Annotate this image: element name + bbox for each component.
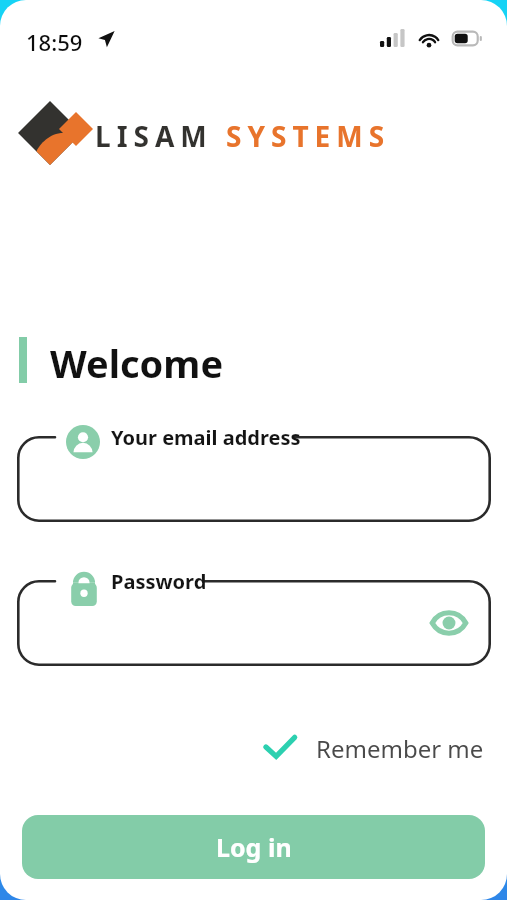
button[interactable]: Remember me [258,722,490,772]
staticText: LISAM SYSTEMS [95,117,391,155]
staticText: 18:59 [26,27,83,57]
button[interactable]: Log in [22,815,485,879]
staticText: Your email address [111,424,301,451]
button[interactable] [17,580,491,666]
button[interactable] [17,436,491,522]
staticText: Remember me [316,732,484,765]
staticText: Password [111,568,207,595]
button[interactable]: Show password [428,606,470,640]
staticText: Welcome [50,337,224,389]
staticText: Log in [216,830,292,864]
